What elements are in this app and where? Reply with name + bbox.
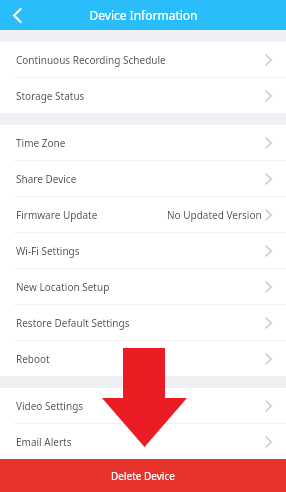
staticText: Device Information bbox=[89, 7, 198, 23]
button[interactable]: Back bbox=[0, 0, 34, 30]
staticText: Storage Status bbox=[16, 89, 85, 103]
button[interactable]: Restore Default Settings bbox=[0, 305, 286, 340]
staticText: Time Zone bbox=[16, 136, 66, 150]
button[interactable]: Delete Device bbox=[0, 459, 286, 492]
button[interactable]: Storage Status bbox=[0, 78, 286, 113]
button[interactable]: Time Zone bbox=[0, 125, 286, 160]
button[interactable]: Continuous Recording Schedule bbox=[0, 42, 286, 77]
staticText: Firmware Update bbox=[16, 208, 98, 222]
staticText: Video Settings bbox=[16, 399, 84, 413]
button[interactable]: Email Alerts bbox=[0, 424, 286, 459]
button[interactable]: Firmware Update bbox=[0, 197, 286, 232]
button[interactable]: New Location Setup bbox=[0, 269, 286, 304]
staticText: Reboot bbox=[16, 352, 50, 366]
staticText: Share Device bbox=[16, 172, 77, 186]
staticText: Wi-Fi Settings bbox=[16, 244, 80, 258]
staticText: Delete Device bbox=[111, 469, 175, 483]
button[interactable]: Video Settings bbox=[0, 388, 286, 423]
staticText: Email Alerts bbox=[16, 435, 72, 449]
staticText: Restore Default Settings bbox=[16, 316, 130, 330]
button[interactable]: Reboot bbox=[0, 341, 286, 376]
button[interactable]: Share Device bbox=[0, 161, 286, 196]
staticText: No Updated Version bbox=[167, 208, 262, 222]
staticText: New Location Setup bbox=[16, 280, 110, 294]
staticText: Continuous Recording Schedule bbox=[16, 53, 166, 67]
button[interactable]: Wi-Fi Settings bbox=[0, 233, 286, 268]
